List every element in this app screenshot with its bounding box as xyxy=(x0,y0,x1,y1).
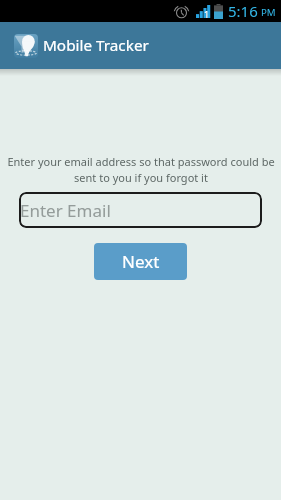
staticText: 5:16 xyxy=(228,1,258,21)
staticText: Enter Email xyxy=(20,199,111,222)
other: Battery level xyxy=(214,4,223,19)
other: Alarm set xyxy=(175,5,188,18)
staticText: PM xyxy=(261,6,276,19)
button[interactable]: Next xyxy=(94,243,187,280)
button[interactable]: Enter Email xyxy=(19,192,262,228)
other: Signal strength xyxy=(196,5,210,18)
staticText: Mobile Tracker xyxy=(43,35,149,56)
staticText: Next xyxy=(122,250,160,273)
other: App icon xyxy=(14,34,38,58)
staticText: 1 xyxy=(204,8,210,20)
staticText: Enter your email address so that passwor… xyxy=(2,154,280,185)
